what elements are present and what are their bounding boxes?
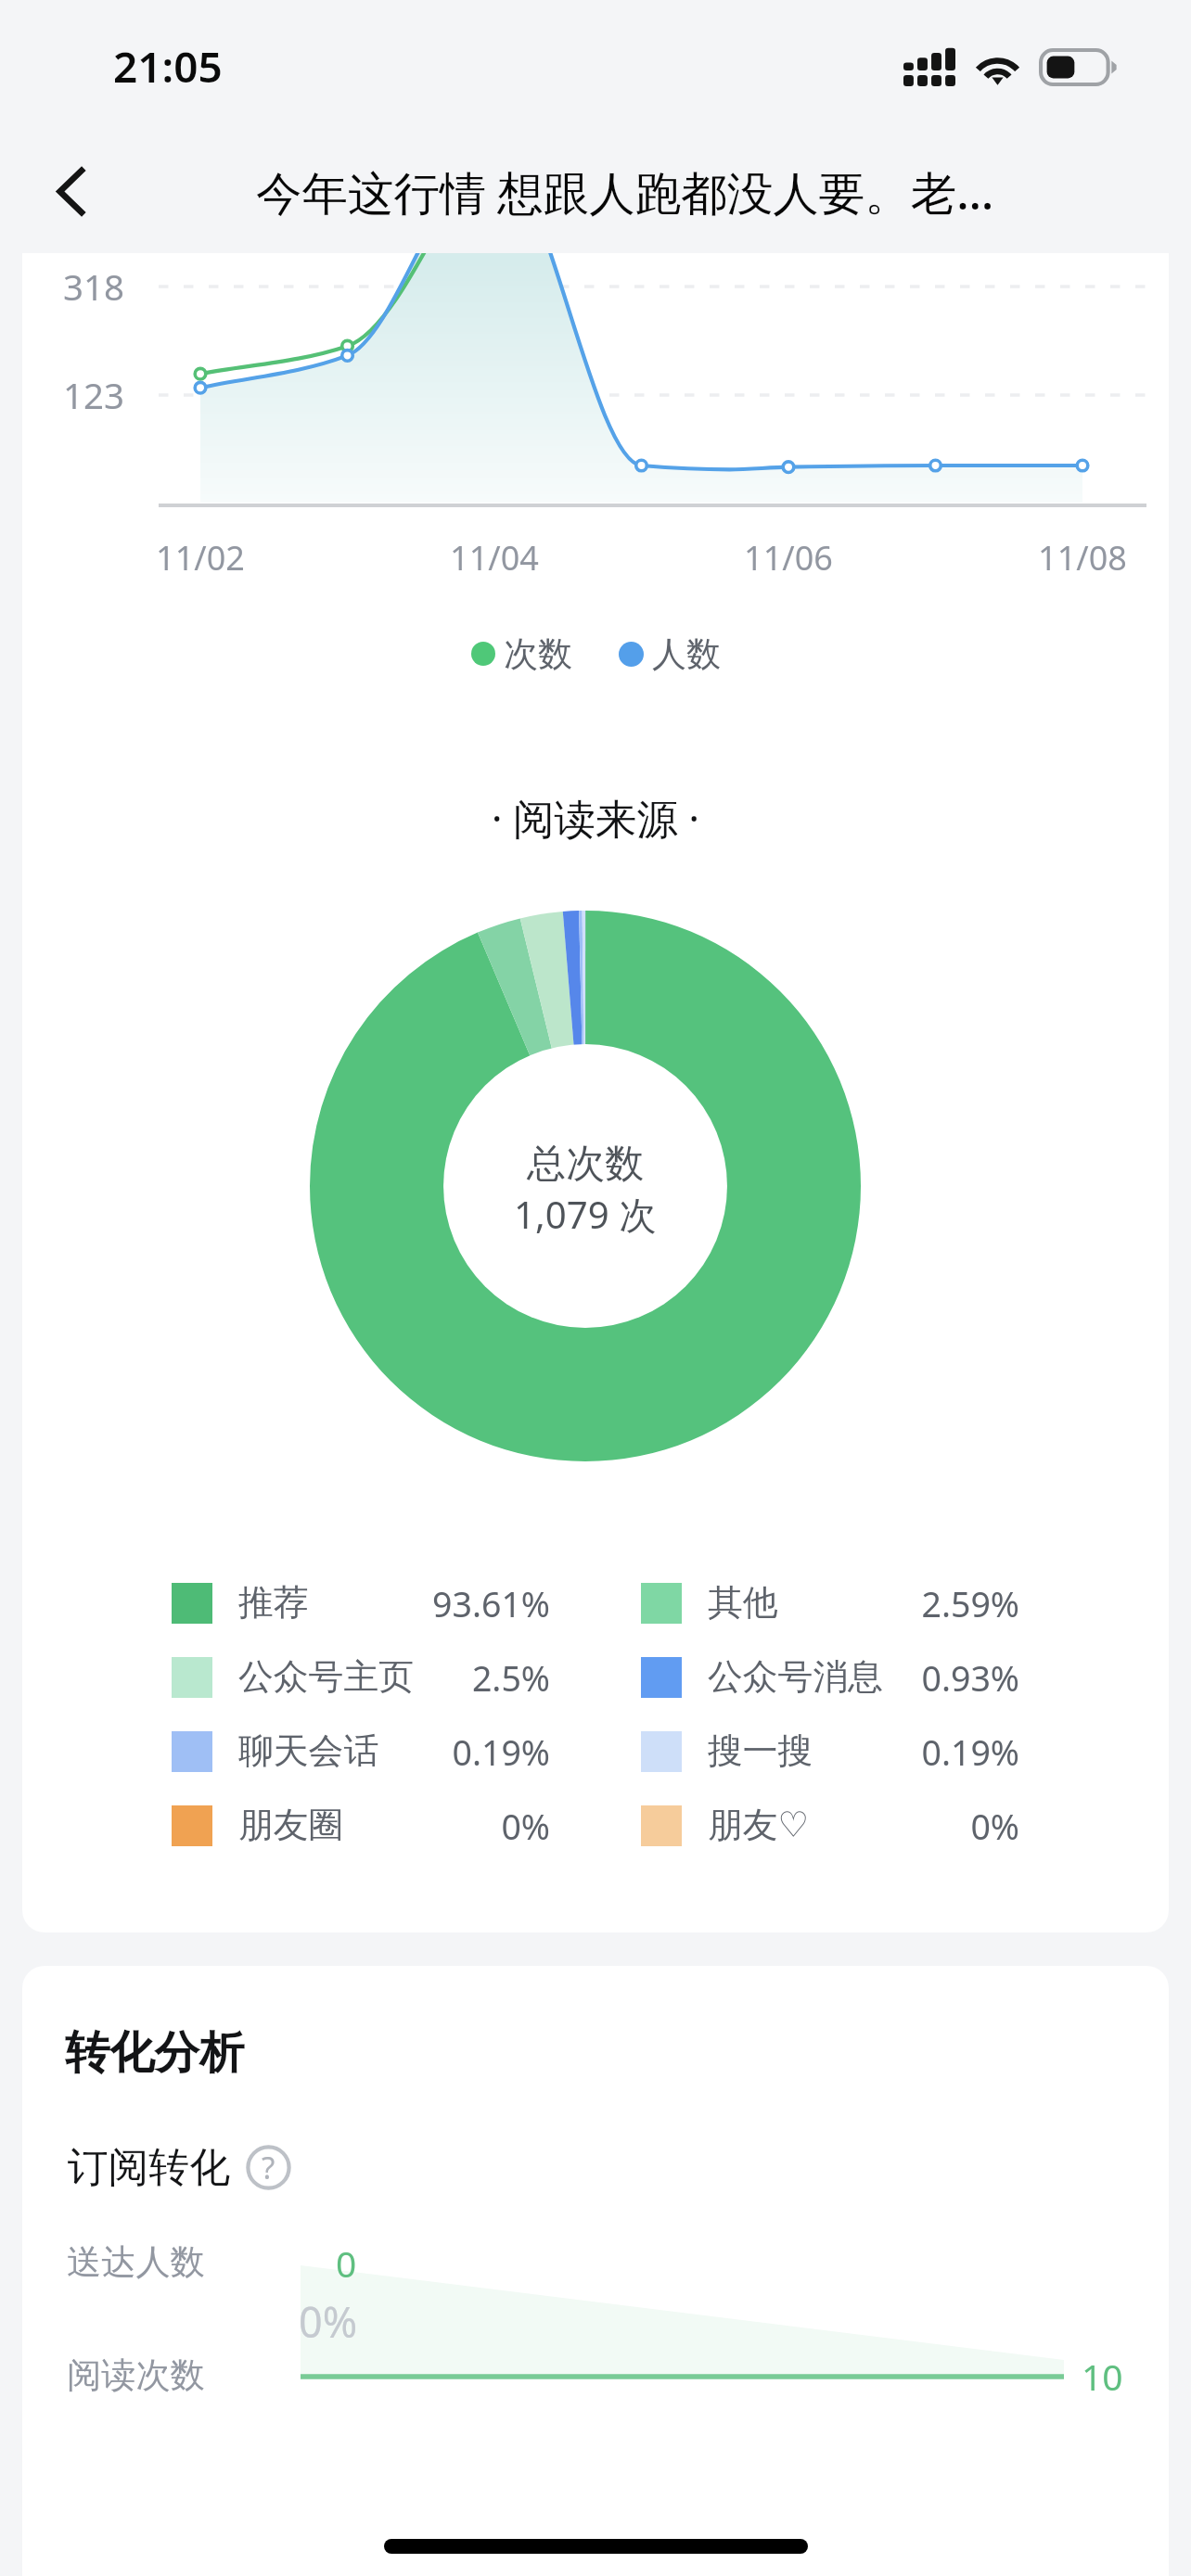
staticText: 0% (501, 1803, 550, 1850)
button[interactable]: 推荐 (172, 1566, 550, 1640)
button[interactable]: 公众号消息 (641, 1640, 1019, 1715)
button[interactable]: 朋友♡ (641, 1789, 1019, 1863)
button[interactable]: 搜一搜 (641, 1715, 1019, 1789)
staticText: 朋友♡ (708, 1804, 970, 1848)
staticText: 11/06 (719, 535, 858, 580)
staticText: 2.5% (471, 1654, 550, 1702)
staticText: 阅读次数 (67, 2353, 205, 2397)
staticText: 123 (63, 371, 124, 419)
staticText: 推荐 (238, 1581, 431, 1626)
staticText: 送达人数 (67, 2240, 205, 2284)
staticText: 2.59% (921, 1580, 1019, 1627)
button[interactable]: 次数 (471, 627, 572, 681)
staticText: 其他 (708, 1581, 921, 1626)
staticText: 朋友圈 (238, 1804, 501, 1848)
staticText: 0.93% (921, 1654, 1019, 1702)
staticText: ? (262, 2147, 275, 2188)
button[interactable]: 其他 (641, 1566, 1019, 1640)
staticText: 聊天会话 (238, 1729, 452, 1774)
staticText: 0 (336, 2238, 357, 2288)
staticText: 公众号消息 (708, 1655, 921, 1700)
staticText: 10 (1082, 2352, 1123, 2401)
button[interactable]: 聊天会话 (172, 1715, 550, 1789)
staticText: 0% (970, 1803, 1019, 1850)
staticText: 转化分析 (65, 2024, 245, 2081)
staticText: 0% (299, 2293, 358, 2350)
staticText: 搜一搜 (708, 1729, 921, 1774)
staticText: 11/04 (425, 535, 564, 580)
staticText: 11/02 (131, 535, 270, 580)
staticText: 总次数 (527, 1140, 644, 1189)
staticText: 人数 (652, 632, 721, 675)
staticText: 0.19% (921, 1728, 1019, 1776)
button[interactable]: 公众号主页 (172, 1640, 550, 1715)
staticText: 21:05 (113, 37, 223, 96)
staticText: 93.61% (431, 1580, 550, 1627)
staticText: 次数 (504, 632, 572, 675)
staticText: 0.19% (452, 1728, 550, 1776)
staticText: 订阅转化 (68, 2142, 231, 2193)
staticText: 11/08 (1013, 535, 1152, 580)
staticText: 公众号主页 (238, 1655, 471, 1700)
button[interactable]: 人数 (619, 627, 721, 681)
button[interactable]: Back (24, 156, 117, 226)
button[interactable]: Help (246, 2145, 291, 2190)
button[interactable]: 朋友圈 (172, 1789, 550, 1863)
staticText: · 阅读来源 · (22, 790, 1169, 847)
staticText: 1,079 次 (514, 1189, 657, 1240)
staticText: 318 (63, 262, 124, 311)
staticText: 今年这行情 想跟人跑都没人要。老… (256, 160, 994, 223)
